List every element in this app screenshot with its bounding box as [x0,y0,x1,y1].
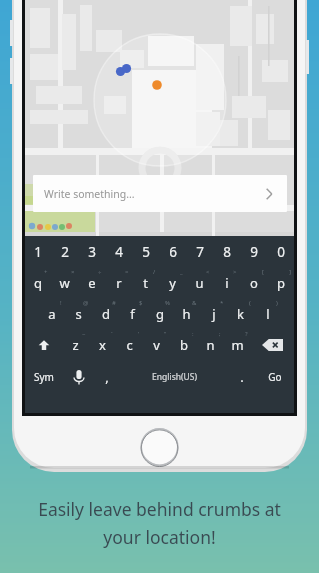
staticText: your location! [103,525,216,549]
staticText: ; [219,330,221,338]
staticText: e [88,274,96,292]
staticText: 9 [250,243,258,261]
button[interactable]: e [78,267,105,298]
button[interactable]: Voice input [63,360,94,393]
button[interactable]: 8 [213,236,240,267]
staticText: q [34,274,42,292]
button[interactable]: English(US) [120,360,229,393]
staticText: w [59,274,70,292]
button[interactable]: q [25,267,51,298]
staticText: d [102,305,110,323]
staticText: n [206,336,215,354]
button[interactable]: 0 [267,236,294,267]
button[interactable]: u [186,267,213,298]
staticText: English(US) [152,371,197,383]
button[interactable]: 1 [25,236,51,267]
button[interactable]: 9 [240,236,267,267]
button[interactable]: c [116,329,143,360]
staticText: l [266,305,270,323]
button[interactable]: a [38,298,65,329]
staticText: ! [60,299,62,307]
button[interactable]: v [143,329,170,360]
button[interactable]: Backspace [251,329,294,360]
button[interactable]: Go [255,360,294,393]
staticText: @ [83,299,89,307]
button[interactable]: 3 [78,236,105,267]
staticText: # [112,299,116,307]
button[interactable]: Write something [33,175,287,212]
staticText: ] [289,268,291,276]
staticText: x [99,336,106,354]
button[interactable]: l [254,298,281,329]
staticText: a [48,305,56,323]
button[interactable]: x [89,329,116,360]
staticText: : [192,330,194,338]
button[interactable]: d [92,298,119,329]
button[interactable]: n [197,329,224,360]
staticText: > [233,268,237,276]
staticText: 5 [142,243,150,261]
staticText: j [212,305,216,323]
button[interactable]: 4 [105,236,132,267]
staticText: p [277,274,285,292]
button[interactable]: . [229,360,255,393]
staticText: 1 [34,243,42,261]
staticText: Go [268,370,282,384]
button[interactable]: , [94,360,120,393]
button[interactable]: r [105,267,132,298]
staticText: h [182,305,191,323]
staticText: $ [139,299,143,307]
staticText: ÷ [98,268,102,276]
button[interactable]: p [267,267,294,298]
button[interactable]: Shift [25,329,62,360]
staticText: / [153,268,156,276]
staticText: < [206,268,210,276]
staticText: 0 [277,243,285,261]
staticText: = [125,268,129,276]
staticText: [ [262,268,264,276]
staticText: ` [111,330,113,338]
staticText: ) [276,299,278,307]
button[interactable]: b [170,329,197,360]
button[interactable]: i [213,267,240,298]
staticText: 3 [88,243,96,261]
button[interactable]: y [159,267,186,298]
button[interactable]: g [146,298,173,329]
staticText: m [231,336,244,354]
staticText: f [130,305,135,323]
button[interactable]: j [200,298,227,329]
button[interactable]: h [173,298,200,329]
button[interactable]: 7 [186,236,213,267]
staticText: ' [138,330,140,338]
button[interactable]: 6 [159,236,186,267]
staticText: & [192,299,197,307]
staticText: t [143,274,148,292]
staticText: _ [180,268,183,276]
staticText: % [165,299,170,307]
staticText: r [116,274,122,292]
button[interactable]: 5 [132,236,159,267]
staticText: 8 [223,243,231,261]
button[interactable]: 2 [51,236,78,267]
staticText: v [153,336,160,354]
staticText: . [240,368,244,386]
staticText: Sym [34,370,54,384]
staticText: c [126,336,133,354]
staticText: s [75,305,82,323]
staticText: k [237,305,244,323]
button[interactable]: t [132,267,159,298]
staticText: 7 [196,243,204,261]
button[interactable]: m [224,329,251,360]
button[interactable]: w [51,267,78,298]
staticText: b [180,336,188,354]
button[interactable]: Sym [25,360,63,393]
button[interactable]: f [119,298,146,329]
button[interactable]: s [65,298,92,329]
button[interactable]: Send [259,184,279,204]
button[interactable]: z [62,329,89,360]
staticText: g [156,305,164,323]
button[interactable]: o [240,267,267,298]
staticText: y [169,274,176,292]
staticText: 2 [61,243,69,261]
button[interactable]: k [227,298,254,329]
